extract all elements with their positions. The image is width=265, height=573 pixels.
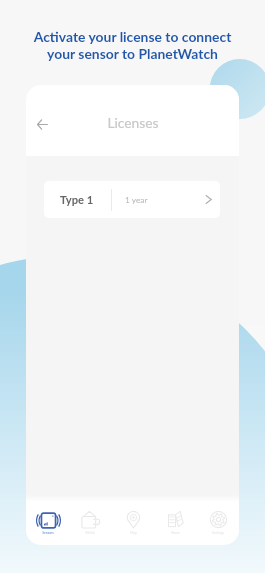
button[interactable]: Map bbox=[112, 508, 154, 537]
staticText: Map bbox=[130, 531, 137, 535]
staticText: 1 year bbox=[125, 195, 148, 205]
staticText: Activate your license to connect your se… bbox=[0, 28, 265, 62]
button[interactable]: Wallet bbox=[69, 508, 111, 537]
staticText: News bbox=[171, 531, 180, 535]
staticText: Type 1 bbox=[60, 193, 94, 206]
button[interactable]: Type 1 bbox=[44, 181, 220, 218]
button[interactable]: Settings bbox=[197, 508, 239, 537]
button[interactable]: Sensors bbox=[27, 508, 69, 537]
button[interactable]: Back bbox=[29, 111, 56, 138]
staticText: Settings bbox=[212, 531, 224, 535]
staticText: Licenses bbox=[107, 114, 159, 131]
staticText: Wallet bbox=[85, 531, 95, 535]
staticText: Sensors bbox=[42, 531, 54, 535]
button[interactable]: News bbox=[154, 508, 196, 537]
